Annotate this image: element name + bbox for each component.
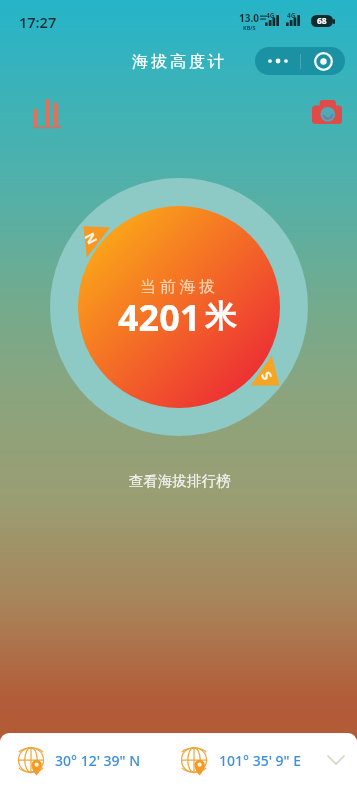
button[interactable]: 30° 12' 39" N [0, 742, 145, 778]
staticText: 海拔高度计 [132, 51, 227, 71]
staticText: 4G [266, 11, 275, 20]
button[interactable]: Camera [307, 92, 347, 132]
staticText: 当前海拔 [140, 277, 219, 297]
button[interactable]: Altitude history chart [27, 93, 67, 133]
button[interactable]: 101° 35' 9" E [181, 742, 306, 778]
button[interactable]: More options [255, 47, 300, 75]
staticText: N [81, 229, 102, 248]
staticText: 101° 35' 9" E [219, 751, 302, 770]
staticText: 4G [287, 11, 296, 20]
button[interactable]: Expand coordinates [318, 742, 354, 778]
staticText: 查看海拔排行榜 [129, 472, 231, 490]
button[interactable]: 查看海拔排行榜 [115, 469, 245, 493]
staticText: 17:27 [19, 12, 57, 32]
staticText: 30° 12' 39" N [55, 751, 141, 770]
staticText: 4201 [118, 293, 201, 342]
button[interactable]: Close mini program [301, 47, 345, 75]
staticText: KB/S [243, 24, 256, 31]
staticText: S [257, 368, 277, 384]
staticText: 米 [205, 297, 236, 336]
staticText: 13.0 [239, 11, 259, 25]
staticText: 68 [317, 15, 327, 27]
